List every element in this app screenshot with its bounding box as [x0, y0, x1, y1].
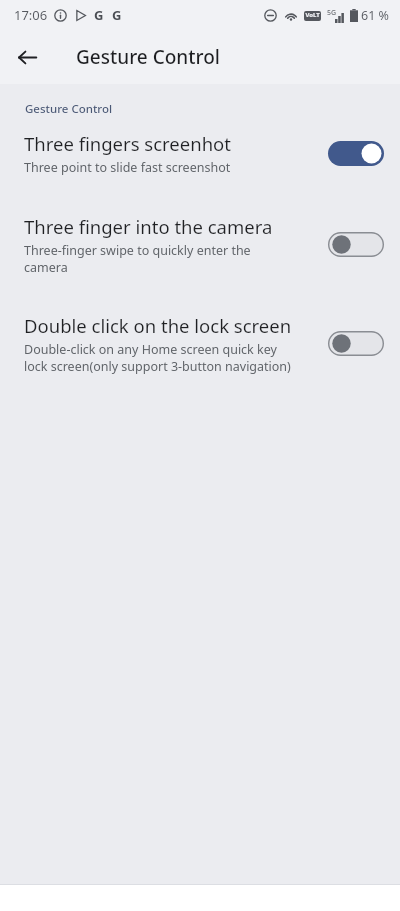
staticText: Three point to slide fast screenshot — [24, 159, 231, 176]
button[interactable]: Off — [328, 232, 384, 257]
staticText: Three fingers screenhot — [24, 131, 231, 156]
button[interactable]: Double click on the lock screen — [0, 297, 400, 394]
staticText: Gesture Control — [76, 44, 220, 70]
button[interactable]: On — [328, 141, 384, 166]
staticText: Gesture Control — [25, 101, 113, 117]
staticText: Three finger into the camera — [24, 214, 273, 239]
staticText: Double-click on any Home screen quick ke… — [24, 341, 296, 374]
staticText: Double click on the lock screen — [24, 313, 292, 338]
staticText: VoLTE — [304, 11, 321, 21]
staticText: G — [94, 6, 104, 24]
button[interactable]: Three finger into the camera — [0, 198, 400, 297]
button[interactable]: Three fingers screenhot — [0, 117, 400, 198]
button[interactable]: Off — [328, 331, 384, 356]
staticText: 61 % — [361, 7, 389, 24]
button[interactable]: Back — [9, 39, 45, 75]
staticText: 17:06 — [14, 6, 48, 24]
staticText: Three-finger swipe to quickly enter the … — [24, 242, 296, 275]
staticText: 5G — [327, 8, 337, 18]
staticText: G — [112, 6, 122, 24]
